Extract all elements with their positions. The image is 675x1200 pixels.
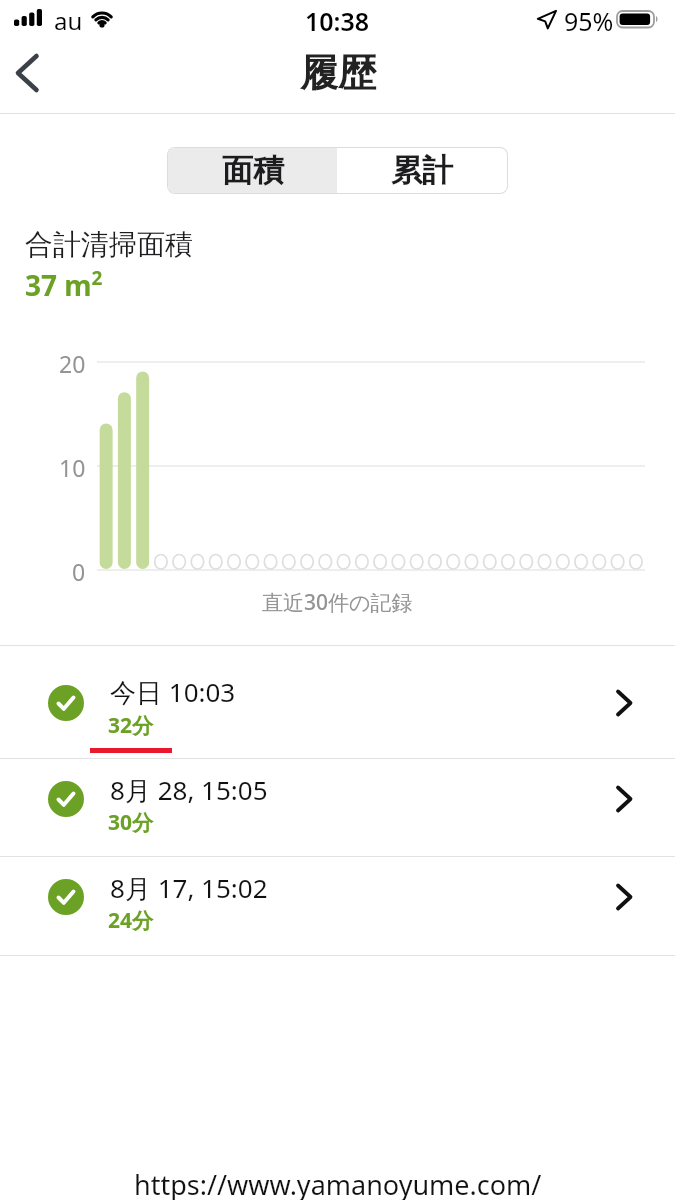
button[interactable]: https://www.yamanoyume.com/ bbox=[115, 1164, 560, 1200]
staticText: 今日 10:03 bbox=[110, 674, 236, 710]
staticText: 直近30件の記録 bbox=[262, 588, 413, 616]
staticText: 8月 28, 15:05 bbox=[110, 772, 268, 808]
staticText: 合計清掃面積 bbox=[25, 227, 193, 262]
staticText: 32分 bbox=[108, 711, 154, 740]
staticText: 履歴 bbox=[300, 49, 376, 97]
staticText: 10:38 bbox=[305, 4, 370, 34]
staticText: 24分 bbox=[108, 906, 154, 935]
staticText: 30分 bbox=[108, 808, 154, 837]
button[interactable]: 面積 bbox=[168, 148, 337, 193]
button[interactable]: 今日 10:03 bbox=[0, 645, 675, 758]
staticText: au bbox=[54, 4, 83, 34]
staticText: 0 bbox=[72, 556, 86, 584]
button[interactable]: 8月 17, 15:02 bbox=[0, 856, 675, 955]
button[interactable] bbox=[8, 50, 52, 96]
staticText: 8月 17, 15:02 bbox=[110, 870, 268, 906]
staticText: 37 m2 bbox=[25, 265, 103, 301]
staticText: https://www.yamanoyume.com/ bbox=[134, 1166, 542, 1200]
staticText: 20 bbox=[59, 348, 86, 376]
staticText: 面積 bbox=[222, 151, 284, 190]
button[interactable]: 累計 bbox=[337, 148, 507, 193]
staticText: 10 bbox=[59, 452, 86, 480]
button[interactable]: 8月 28, 15:05 bbox=[0, 758, 675, 856]
staticText: 累計 bbox=[391, 151, 453, 190]
staticText: 95% bbox=[564, 4, 614, 34]
